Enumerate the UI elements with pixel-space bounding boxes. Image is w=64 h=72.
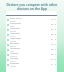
button[interactable]: Hydration — [7, 47, 56, 52]
staticText: 08 — [51, 33, 54, 36]
button[interactable]: Workouts — [7, 27, 56, 32]
staticText: Hydration — [10, 47, 21, 50]
staticText: 09 — [51, 53, 54, 56]
staticText: audio — [10, 60, 15, 62]
staticText: 16 — [51, 43, 54, 46]
button[interactable]: Progress — [7, 62, 56, 67]
staticText: weekly — [10, 20, 16, 22]
button[interactable]: Body scans — [7, 17, 56, 22]
button[interactable]: Meal plans — [7, 22, 56, 27]
staticText: Body scans — [10, 17, 22, 20]
button[interactable]: Mobility — [7, 52, 56, 57]
staticText: Sleep data — [10, 37, 21, 40]
staticText: 1-on-1 — [10, 35, 16, 37]
staticText: Recovery — [10, 42, 20, 45]
staticText: 21 — [51, 38, 54, 41]
button[interactable]: Sleep data — [7, 37, 56, 42]
staticText: Meal plans — [10, 22, 22, 25]
staticText: 64 — [51, 48, 54, 51]
button[interactable]: Recovery — [7, 42, 56, 47]
staticText: Mobility — [10, 52, 19, 55]
staticText: 45 — [51, 28, 54, 31]
staticText: daily — [10, 50, 14, 52]
button[interactable]: Coaching — [7, 32, 56, 37]
staticText: 30 — [51, 23, 54, 26]
staticText: Coaching — [10, 32, 20, 35]
staticText: daily — [10, 25, 14, 27]
button[interactable]: Mindset — [7, 57, 56, 62]
staticText: weekly — [10, 45, 16, 47]
staticText: 11 — [51, 63, 54, 66]
staticText: sessions — [10, 55, 18, 57]
staticText: Mindset — [10, 57, 19, 60]
staticText: custom — [10, 30, 17, 32]
staticText: Workouts — [10, 27, 20, 30]
staticText: 12 — [51, 18, 54, 21]
staticText: nightly — [10, 40, 16, 42]
staticText: reports — [10, 65, 17, 67]
staticText: 27 — [51, 58, 54, 61]
staticText: Progress — [10, 62, 20, 65]
staticText: Declare you compare with other doctors o… — [1, 3, 63, 10]
